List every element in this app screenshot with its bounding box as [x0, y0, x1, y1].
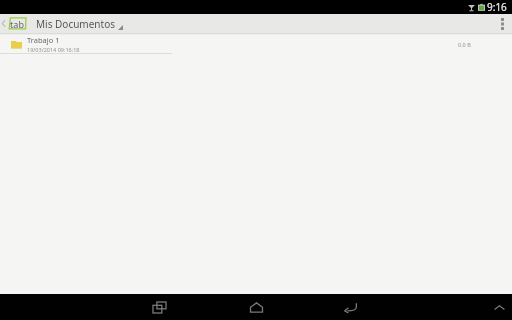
button[interactable]: Navigate up [0, 14, 27, 33]
staticText: 9:16 [487, 0, 507, 14]
button[interactable]: Mis Documentos [36, 14, 123, 33]
staticText: Trabajo 1 [27, 35, 60, 45]
button[interactable]: Home [238, 294, 274, 320]
staticText: 0.0 B [458, 41, 471, 48]
staticText: tab [10, 18, 24, 30]
button[interactable]: Trabajo 1 [0, 35, 512, 54]
staticText: 19/03/2014 09:16:18 [27, 46, 80, 53]
button[interactable]: Show notifications [486, 294, 512, 320]
button[interactable]: More options [492, 14, 512, 33]
button[interactable]: Back [332, 294, 368, 320]
staticText: Mis Documentos [36, 17, 115, 31]
button[interactable]: Recent apps [141, 294, 177, 320]
